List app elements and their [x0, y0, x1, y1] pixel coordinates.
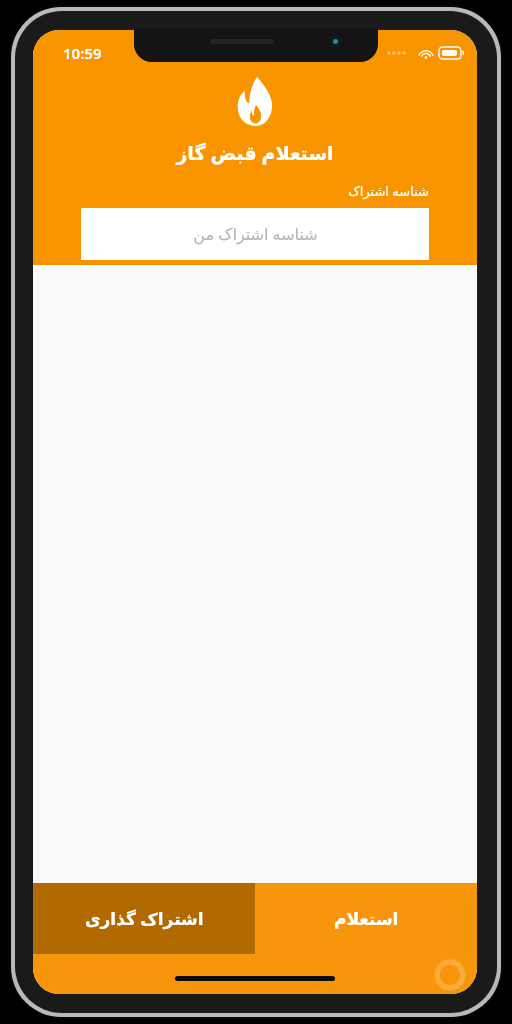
- staticText: شناسه اشتراک: [33, 182, 429, 200]
- staticText: استعلام: [334, 909, 399, 929]
- button[interactable]: اشتراک گذاری: [33, 883, 255, 954]
- staticText: اشتراک گذاری: [85, 907, 204, 930]
- staticText: 10:59: [63, 43, 102, 63]
- button[interactable]: استعلام: [255, 883, 477, 954]
- button[interactable]: شناسه اشتراک من: [81, 208, 429, 260]
- other: Gas flame logo: [237, 76, 273, 126]
- staticText: شناسه اشتراک من: [193, 223, 318, 245]
- staticText: استعلام قبض گاز: [33, 140, 477, 166]
